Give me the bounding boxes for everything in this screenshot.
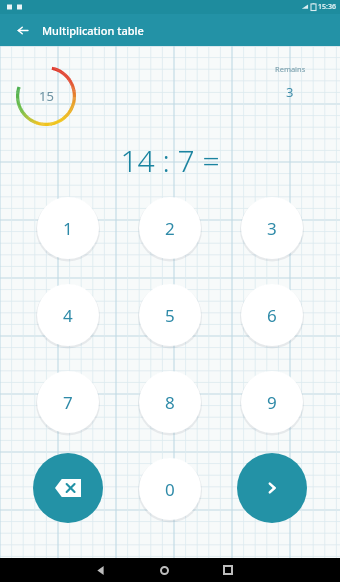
button[interactable]: 4 [37, 284, 99, 346]
staticText: 4 [63, 304, 73, 327]
staticText: 0 [165, 478, 175, 501]
staticText: 7 [63, 391, 73, 414]
button[interactable]: 3 [241, 197, 303, 259]
button[interactable]: 2 [139, 197, 201, 259]
button[interactable]: 9 [241, 371, 303, 433]
button[interactable]: Back [88, 558, 112, 582]
staticText: 9 [267, 391, 277, 414]
staticText: 2 [165, 217, 175, 240]
staticText: Remains [275, 64, 306, 74]
button[interactable]: 5 [139, 284, 201, 346]
staticText: 5 [165, 304, 175, 327]
button[interactable]: Home [152, 558, 176, 582]
staticText: 8 [165, 391, 175, 414]
button[interactable]: Recents [216, 558, 240, 582]
staticText: Multiplication table [42, 23, 144, 38]
staticText: 6 [267, 304, 277, 327]
staticText: 14 : 7 = [120, 140, 220, 181]
button[interactable]: 6 [241, 284, 303, 346]
staticText: 3 [286, 83, 294, 101]
button[interactable]: 8 [139, 371, 201, 433]
button[interactable]: Next [237, 453, 307, 523]
staticText: 15:36 [318, 2, 336, 12]
button[interactable]: 1 [37, 197, 99, 259]
button[interactable]: Back [8, 16, 36, 44]
button[interactable]: 7 [37, 371, 99, 433]
button[interactable]: Backspace [33, 453, 103, 523]
button[interactable]: 0 [139, 458, 201, 520]
staticText: 3 [267, 217, 277, 240]
staticText: 1 [63, 217, 73, 240]
staticText: 15 [39, 87, 54, 105]
